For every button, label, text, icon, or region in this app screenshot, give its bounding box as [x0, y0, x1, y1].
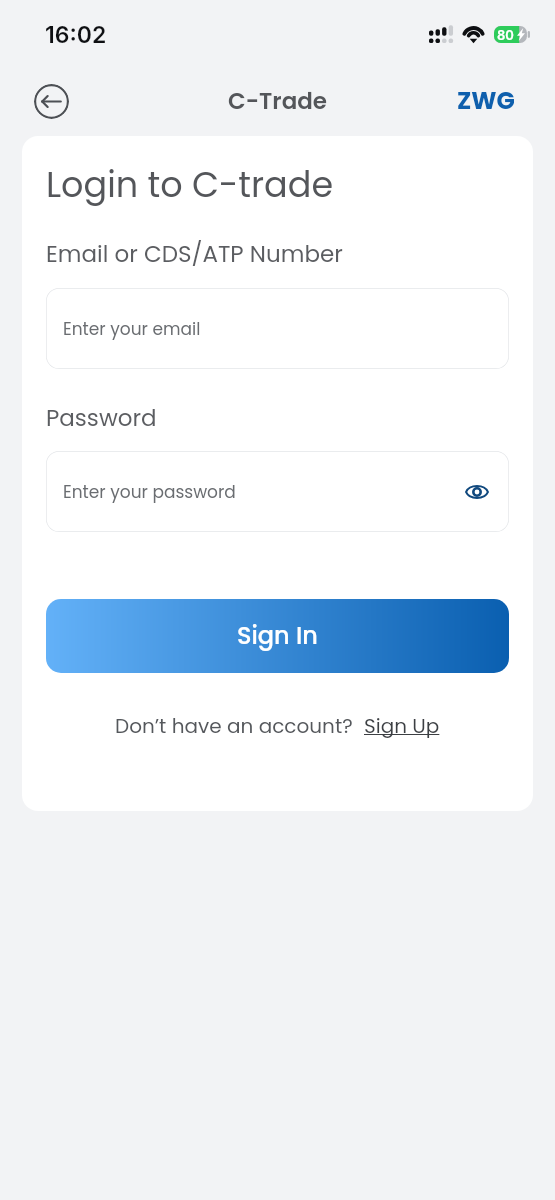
staticText: Don’t have an account? [115, 712, 353, 740]
staticText: Sign In [237, 619, 318, 653]
staticText: 16:02 [45, 21, 107, 49]
staticText: Sign Up [364, 712, 440, 740]
button[interactable]: ZWG [457, 84, 515, 118]
staticText: Enter your email [63, 317, 201, 341]
staticText: Login to C-trade [46, 160, 334, 209]
button[interactable]: Back [34, 84, 69, 119]
button[interactable]: Enter your email [46, 288, 509, 369]
button[interactable]: Enter your password [46, 451, 509, 532]
staticText: 80 [497, 27, 514, 43]
staticText: Enter your password [63, 480, 236, 504]
button[interactable]: Show password [462, 477, 492, 507]
button[interactable]: Sign Up [364, 712, 440, 740]
button[interactable]: Sign In [46, 599, 509, 673]
staticText: Password [46, 402, 157, 434]
staticText: Email or CDS/ATP Number [46, 238, 343, 270]
staticText: ZWG [457, 84, 515, 118]
staticText: C-Trade [228, 85, 328, 117]
